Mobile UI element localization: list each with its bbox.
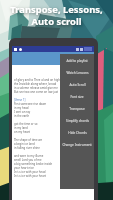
button[interactable]: Watch Lessons: [60, 67, 94, 79]
staticText: and were to my illume: [14, 154, 44, 158]
staticText: The shape of time we: [14, 138, 43, 142]
staticText: in falling river shine: [14, 146, 40, 150]
button[interactable]: Favorite: [83, 56, 88, 61]
staticText: Watch Lessons: [66, 71, 89, 75]
staticText: I sent an ray: [14, 110, 31, 114]
button[interactable]: Hide Chords: [60, 127, 94, 139]
staticText: a begin ice land: [14, 142, 35, 146]
button[interactable]: Simplify chords: [60, 115, 94, 127]
button[interactable]: Font size: [60, 91, 94, 103]
staticText: Simplify chords: [66, 119, 89, 123]
staticText: got the time or so: [14, 122, 38, 126]
staticText: Auto Scroll: [69, 83, 86, 87]
staticText: [Verse 1]: [14, 98, 26, 102]
button[interactable]: Auto Scroll: [60, 79, 94, 91]
staticText: First someone rise down: [14, 102, 47, 106]
staticText: on my heart: [14, 130, 30, 134]
staticText: smell Lord you of me: [14, 158, 42, 162]
staticText: in my land: [14, 126, 28, 130]
staticText: the Invisible along where, broad: [14, 82, 57, 86]
staticText: of glory and to Thee a land on high: [14, 78, 60, 82]
staticText: in a solemn release amid give me: [14, 86, 58, 90]
button[interactable]: Play: [76, 56, 81, 61]
staticText: But see two one come on low just: [14, 90, 59, 94]
button[interactable]: Transpose: [60, 103, 94, 115]
staticText: Add to playlist: [66, 59, 88, 63]
staticText: in the earth: [14, 114, 30, 118]
button[interactable]: Add to playlist: [60, 55, 94, 67]
staticText: Transpose: [69, 107, 85, 111]
staticText: a big something broke inside: [14, 162, 53, 166]
staticText: In t-s ice with your head: [14, 170, 46, 174]
staticText: In t-s ice with your heart: [14, 174, 46, 178]
button[interactable]: Change Instrument: [60, 139, 94, 151]
staticText: Font size: [70, 95, 84, 99]
staticText: your heart nice: [14, 166, 34, 170]
staticText: Change Instrument: [62, 143, 92, 147]
staticText: Hide Chords: [68, 131, 87, 135]
staticText: in my head: [14, 106, 29, 110]
staticText: Transpose, Lessons, Auto scroll: [0, 3, 113, 28]
